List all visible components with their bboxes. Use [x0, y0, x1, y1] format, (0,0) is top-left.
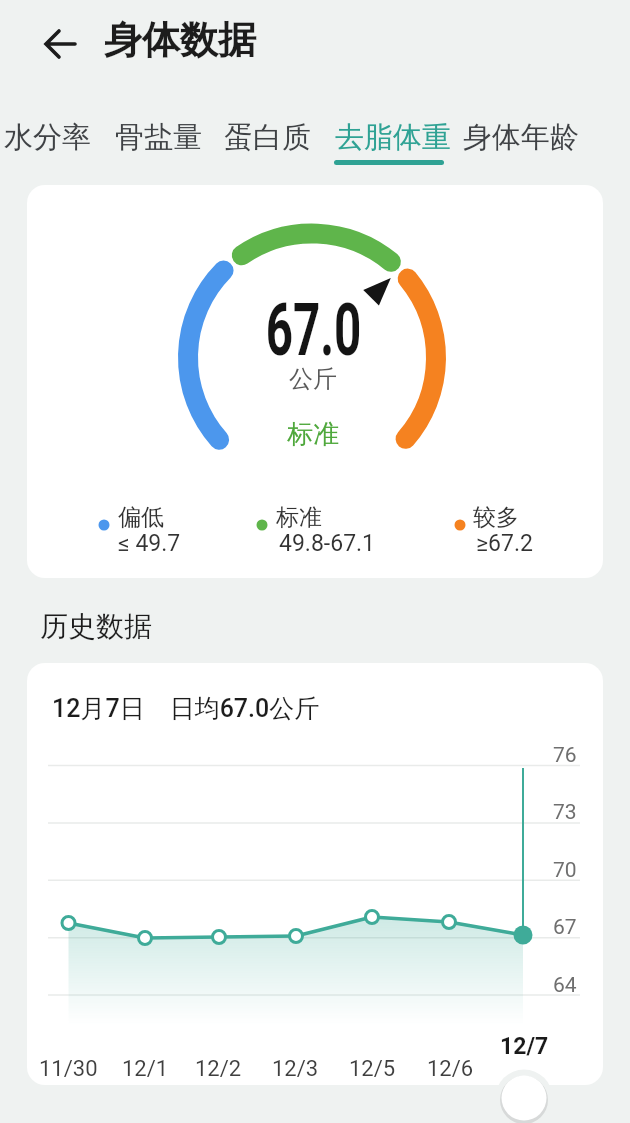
staticText: 身体数据	[104, 16, 256, 64]
staticText: 骨盐量	[115, 119, 202, 156]
button[interactable]	[501, 1075, 547, 1121]
staticText: ≥67.2	[476, 530, 533, 557]
staticText: 12/1	[122, 1056, 169, 1082]
staticText: 12/6	[427, 1056, 474, 1082]
staticText: 12/5	[349, 1056, 396, 1082]
staticText: 公斤	[289, 364, 337, 394]
staticText: 12/2	[195, 1056, 242, 1082]
staticText: ≤ 49.7	[118, 530, 181, 557]
staticText: 12/7	[500, 1033, 549, 1060]
staticText: 12/3	[272, 1056, 319, 1082]
button[interactable]	[38, 24, 82, 64]
staticText: 较多	[473, 503, 519, 532]
staticText: 67	[553, 915, 577, 940]
staticText: 标准	[287, 418, 339, 451]
staticText: 标准	[276, 503, 322, 532]
staticText: 67.0	[266, 288, 361, 372]
staticText: 11/30	[39, 1056, 98, 1082]
staticText: 49.8-67.1	[279, 530, 376, 557]
staticText: 70	[553, 858, 577, 883]
staticText: 蛋白质	[224, 119, 311, 156]
staticText: 去脂体重	[335, 119, 451, 156]
button[interactable]: 水分率	[4, 105, 91, 169]
staticText: 12月7日 日均67.0公斤	[52, 693, 320, 724]
staticText: 历史数据	[40, 609, 152, 644]
button[interactable]: 身体年龄	[463, 105, 579, 169]
staticText: 水分率	[4, 119, 91, 156]
staticText: 73	[553, 800, 577, 825]
button[interactable]: 蛋白质	[224, 105, 311, 169]
staticText: 76	[553, 743, 577, 768]
staticText: 64	[553, 973, 577, 998]
button[interactable]: 去脂体重	[335, 105, 451, 169]
staticText: 偏低	[118, 503, 164, 532]
button[interactable]: 骨盐量	[115, 105, 202, 169]
staticText: 身体年龄	[463, 119, 579, 156]
